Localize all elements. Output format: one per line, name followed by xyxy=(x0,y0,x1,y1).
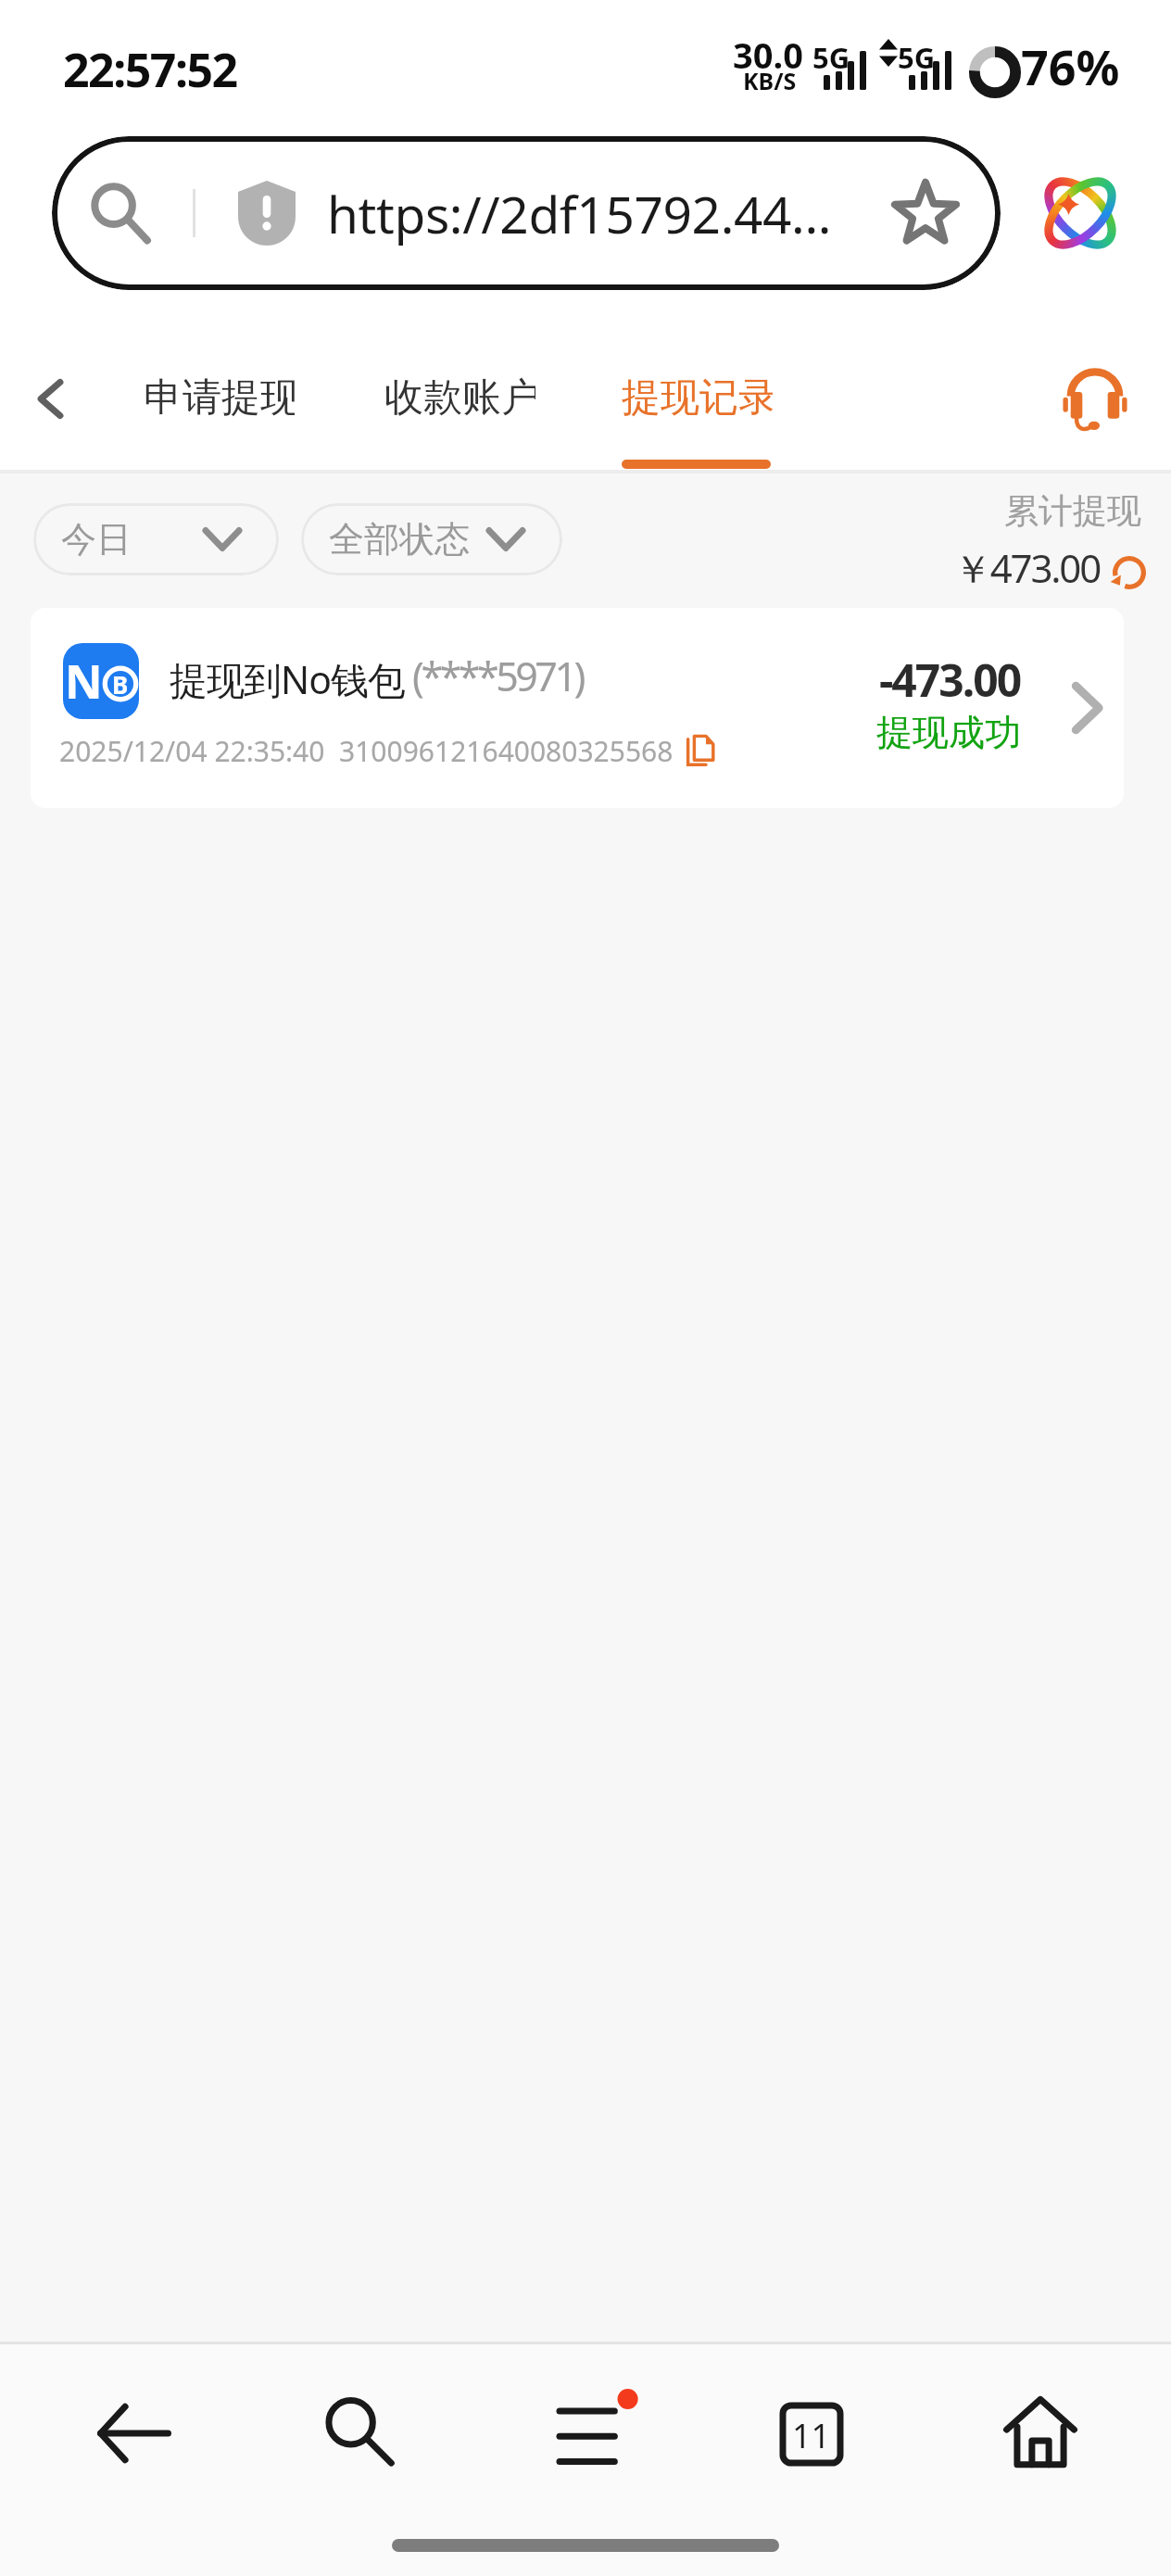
button[interactable]: 提现记录 xyxy=(622,357,773,438)
staticText: 今日 xyxy=(61,517,132,562)
staticText: https://2df15792.44... xyxy=(327,179,832,248)
button[interactable]: Back xyxy=(71,2370,197,2496)
button[interactable]: Copy xyxy=(679,729,722,772)
staticText: 22:57:52 xyxy=(63,38,237,101)
button[interactable]: 今日 xyxy=(33,503,279,575)
button[interactable]: 全部状态 xyxy=(301,503,562,575)
staticText: -473.00 xyxy=(879,650,1021,710)
staticText: 2025/12/04 22:35:40 31009612164008032556… xyxy=(59,732,674,770)
staticText: 76% xyxy=(1021,33,1120,99)
staticText: 提现到No钱包 xyxy=(170,653,405,705)
staticText: 11 xyxy=(792,2413,831,2458)
button[interactable]: 收款账户 xyxy=(384,357,535,438)
staticText: 提现记录 xyxy=(622,373,773,423)
staticText: (****5971) xyxy=(412,649,583,703)
staticText: 5G xyxy=(812,38,850,77)
staticText: 5G xyxy=(898,38,936,77)
button[interactable]: Customer service xyxy=(1061,370,1129,431)
button[interactable]: Tabs xyxy=(749,2371,875,2497)
button[interactable]: Search xyxy=(297,2369,423,2495)
button[interactable]: Refresh xyxy=(1105,549,1153,597)
button[interactable]: N xyxy=(31,608,1124,808)
button[interactable]: 申请提现 xyxy=(144,357,295,438)
button[interactable]: Address bar xyxy=(52,136,1001,290)
button[interactable]: Menu xyxy=(539,2375,665,2501)
button[interactable]: Details xyxy=(1050,673,1120,743)
button[interactable]: Back xyxy=(13,361,87,436)
staticText: 30.0 xyxy=(733,31,803,79)
button[interactable]: Browser menu xyxy=(1036,169,1125,258)
staticText: 提现成功 xyxy=(876,710,1021,755)
staticText: 累计提现 xyxy=(1004,489,1141,533)
staticText: KB/S xyxy=(743,65,797,96)
staticText: 申请提现 xyxy=(144,373,295,423)
staticText: ￥473.00 xyxy=(953,541,1100,594)
staticText: N xyxy=(65,650,103,713)
staticText: 收款账户 xyxy=(384,373,535,423)
button[interactable]: Home xyxy=(977,2369,1103,2495)
staticText: 全部状态 xyxy=(329,517,470,562)
staticText: B xyxy=(112,668,129,701)
